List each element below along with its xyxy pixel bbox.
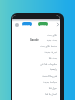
staticText: رئيسية (20, 68, 57, 71)
button[interactable]: Open (38, 22, 48, 26)
staticText: معلومات هنا عن (20, 62, 57, 65)
staticText: Google Test (30, 38, 42, 41)
staticText: اتصل بنا هنا (20, 92, 57, 95)
button[interactable]: Account (15, 23, 19, 27)
staticText: سياسة جديدة (20, 80, 57, 83)
staticText: صفحة نتائج بحث (20, 44, 57, 47)
button[interactable]: Install (22, 22, 32, 26)
staticText: بحث هنا (20, 56, 57, 59)
staticText: بحث جديد (20, 38, 57, 41)
staticText: Install (23, 23, 31, 26)
staticText: تجربة جديدة (20, 50, 57, 53)
button[interactable]: More (56, 22, 60, 27)
staticText: Open (40, 23, 47, 26)
staticText: شروط الخدمة (20, 74, 57, 77)
staticText: نتائج بحث (20, 33, 57, 36)
staticText: حول هنا (20, 86, 57, 89)
